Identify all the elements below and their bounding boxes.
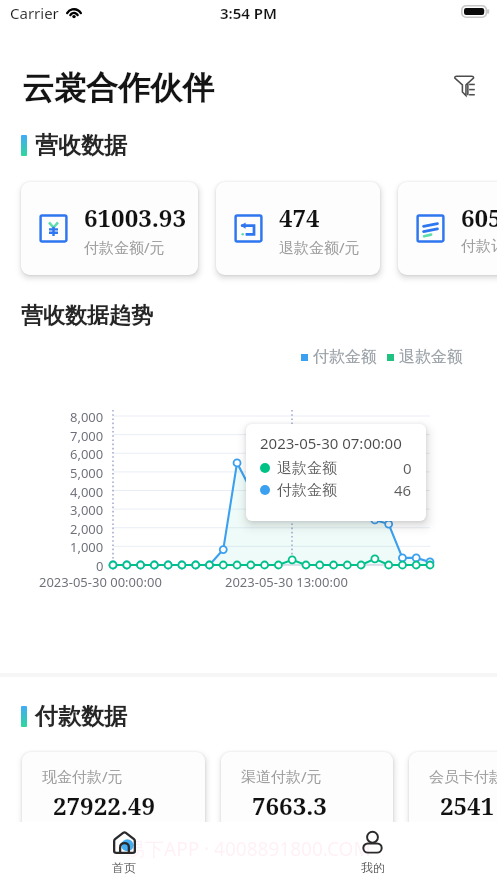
button[interactable]: 渠道付款/元 — [221, 752, 393, 822]
staticText: 0 — [403, 458, 412, 478]
staticText: Carrier — [10, 3, 59, 23]
staticText: 6,000 — [70, 445, 104, 463]
staticText: 27922.49 — [53, 789, 155, 822]
staticText: 3:54 PM — [220, 3, 277, 23]
staticText: 退款金额 — [277, 459, 337, 478]
staticText: 474 — [279, 201, 320, 234]
staticText: 5,000 — [70, 464, 104, 482]
staticText: 2023-05-30 07:00:00 — [260, 433, 402, 453]
staticText: 退款金额 — [399, 347, 463, 367]
staticText: 付款金额/元 — [84, 237, 165, 257]
staticText: 付款数据 — [35, 702, 127, 731]
staticText: 付款金额 — [277, 481, 337, 500]
staticText: 46 — [394, 480, 412, 500]
staticText: 2023-05-30 13:00:00 — [225, 573, 348, 591]
staticText: 现金付款/元 — [42, 766, 123, 786]
staticText: 营收数据 — [35, 131, 127, 160]
staticText: 7663.3 — [252, 789, 327, 822]
button[interactable]: 会员卡付款/元 — [409, 752, 497, 822]
staticText: 退款金额/元 — [279, 237, 360, 257]
staticText: 易下APP · 4008891800.COM — [126, 836, 371, 862]
staticText: 4,000 — [70, 483, 104, 501]
button[interactable]: 474 — [216, 182, 380, 275]
staticText: 我的 — [361, 860, 385, 875]
staticText: 首页 — [112, 860, 136, 875]
staticText: 0 — [96, 557, 104, 575]
staticText: 1,000 — [70, 538, 104, 556]
staticText: 61003.93 — [84, 201, 186, 234]
button[interactable]: 现金付款/元 — [22, 752, 205, 822]
staticText: 8,000 — [70, 408, 104, 426]
button[interactable]: 首页 — [0, 822, 248, 883]
staticText: 7,000 — [70, 427, 104, 445]
staticText: 付款订单数 — [461, 237, 497, 256]
staticText: 渠道付款/元 — [241, 766, 322, 786]
staticText: 3,000 — [70, 501, 104, 519]
staticText: 会员卡付款/元 — [429, 766, 497, 786]
staticText: 营收数据趋势 — [21, 302, 153, 330]
staticText: 2541 — [440, 789, 495, 822]
button[interactable]: Filter — [444, 66, 484, 106]
button[interactable]: 6053 — [398, 182, 497, 275]
button[interactable]: 61003.93 — [21, 182, 198, 275]
staticText: 付款金额 — [313, 347, 377, 367]
staticText: 云裳合作伙伴 — [22, 68, 214, 108]
staticText: 6053 — [461, 201, 497, 234]
staticText: 2,000 — [70, 520, 104, 538]
staticText: 2023-05-30 00:00:00 — [39, 573, 162, 591]
button[interactable]: 我的 — [248, 822, 497, 883]
